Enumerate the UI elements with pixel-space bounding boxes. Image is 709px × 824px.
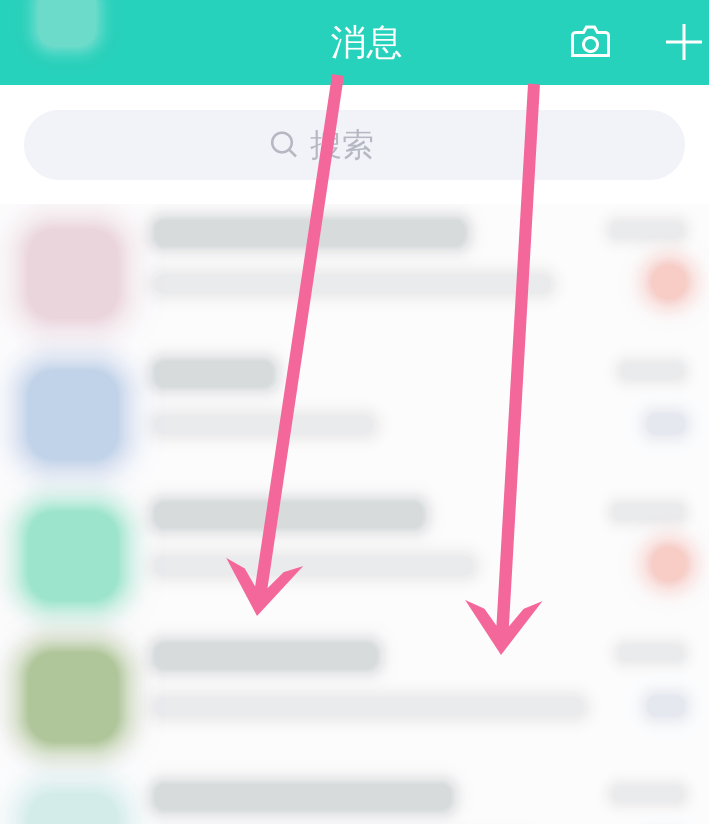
button[interactable]: Profile	[26, 2, 106, 82]
button[interactable]: Camera	[567, 19, 613, 65]
button[interactable]	[0, 0, 709, 824]
button[interactable]	[0, 0, 709, 824]
button[interactable]	[0, 0, 709, 824]
button[interactable]	[0, 0, 709, 824]
button[interactable]: Add	[661, 19, 707, 65]
button[interactable]: 搜索	[0, 85, 661, 155]
staticText: 消息	[330, 20, 402, 65]
staticText: 搜索	[310, 125, 374, 165]
button[interactable]	[0, 0, 709, 824]
